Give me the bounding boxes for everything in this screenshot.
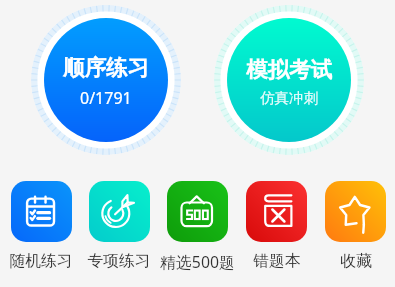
button[interactable]: 精选500题 xyxy=(137,181,257,273)
staticText: 精选500题 xyxy=(160,251,235,273)
staticText: 顺序练习 xyxy=(63,54,149,81)
button[interactable]: 顺序练习 xyxy=(31,5,181,155)
button[interactable]: 专项练习 xyxy=(59,181,179,271)
button[interactable]: 模拟考试 xyxy=(214,5,364,155)
button[interactable]: 随机练习 xyxy=(0,181,101,271)
staticText: 模拟考试 xyxy=(246,56,332,83)
staticText: 错题本 xyxy=(253,251,301,271)
staticText: 0/1791 xyxy=(80,87,132,109)
staticText: 专项练习 xyxy=(87,251,151,271)
staticText: 仿真冲刺 xyxy=(260,89,318,107)
staticText: 随机练习 xyxy=(9,251,73,271)
button[interactable]: 错题本 xyxy=(216,181,336,271)
button[interactable]: 收藏 xyxy=(295,181,395,271)
staticText: 收藏 xyxy=(340,251,372,271)
